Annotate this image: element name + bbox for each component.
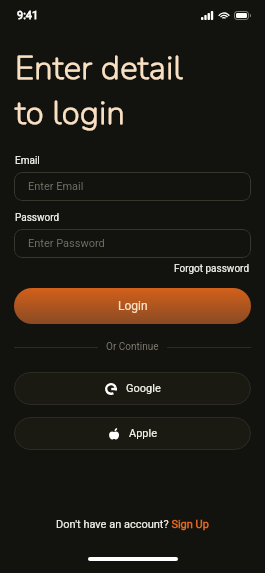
staticText: Enter Password xyxy=(28,237,105,250)
other: Google xyxy=(105,383,117,395)
staticText: Or Continue xyxy=(106,341,159,353)
staticText: Enter detail to login xyxy=(15,46,184,135)
staticText: Apple xyxy=(129,427,158,440)
staticText: Email xyxy=(15,155,40,167)
button[interactable]: Enter Email xyxy=(14,172,251,201)
button[interactable]: Don't have an account? Sign Up xyxy=(56,518,209,531)
other: Apple xyxy=(108,428,120,440)
staticText: 9:41 xyxy=(17,9,39,22)
staticText: Google xyxy=(126,382,161,395)
button[interactable]: Login xyxy=(14,288,251,324)
button[interactable]: Enter Password xyxy=(14,229,251,258)
staticText: Enter Email xyxy=(28,180,84,193)
button[interactable]: Apple xyxy=(14,417,251,450)
button[interactable]: Google xyxy=(14,372,251,405)
staticText: Password xyxy=(15,212,60,224)
staticText: Login xyxy=(118,299,148,313)
button[interactable]: Forgot password xyxy=(174,263,250,275)
